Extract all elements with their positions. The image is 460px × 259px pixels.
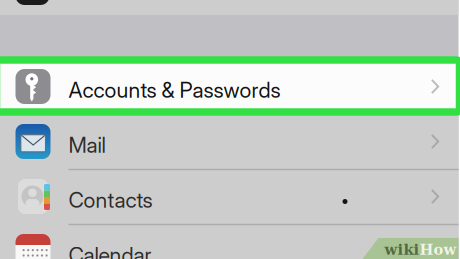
staticText: wiki xyxy=(384,241,419,258)
staticText: Calendar xyxy=(68,242,151,259)
button[interactable]: Calendar xyxy=(0,224,458,259)
button[interactable]: Accounts & Passwords xyxy=(0,59,458,114)
staticText: Contacts xyxy=(68,187,152,213)
staticText: Mail xyxy=(68,132,105,158)
button[interactable]: Mail xyxy=(0,114,458,169)
button[interactable]: Contacts xyxy=(0,169,458,224)
staticText: How xyxy=(419,241,456,258)
staticText: Accounts & Passwords xyxy=(68,77,280,103)
